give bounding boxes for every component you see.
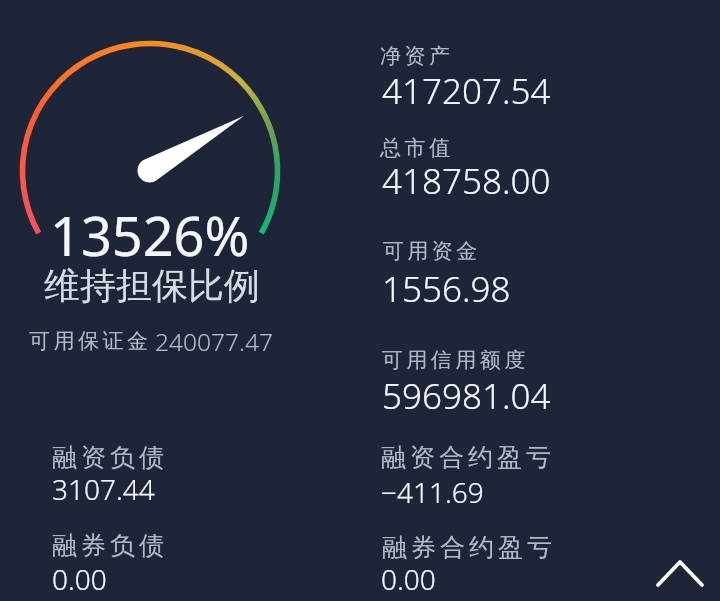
staticText: 可用信用额度 <box>380 347 527 373</box>
staticText: 融资合约盈亏 <box>379 442 553 473</box>
button[interactable]: 总市值 418758.00 <box>376 128 706 208</box>
staticText: 净资产 <box>380 43 454 69</box>
button[interactable]: 融券负债 0.00 <box>40 524 340 596</box>
staticText: 596981.04 <box>382 372 551 420</box>
button[interactable]: 融资负债 3107.44 <box>40 436 340 508</box>
button[interactable]: Collapse <box>648 548 712 601</box>
staticText: 融资负债 <box>50 442 166 473</box>
staticText: 融券合约盈亏 <box>380 532 554 563</box>
button[interactable]: 可用资金 1556.98 <box>376 232 706 312</box>
button[interactable]: 可用信用额度 596981.04 <box>376 340 706 420</box>
staticText: 13526% <box>50 198 250 272</box>
staticText: 可用保证金 <box>29 328 152 354</box>
button[interactable]: 净资产 417207.54 <box>376 36 706 116</box>
staticText: 418758.00 <box>382 157 551 205</box>
staticText: 0.00 <box>52 560 107 598</box>
button[interactable]: 融券合约盈亏 0.00 <box>370 524 640 596</box>
staticText: −411.69 <box>381 473 484 511</box>
staticText: 1556.98 <box>382 265 511 313</box>
staticText: 融券负债 <box>50 530 166 561</box>
staticText: 240077.47 <box>155 325 273 358</box>
staticText: 3107.44 <box>52 470 155 508</box>
button[interactable]: 维持担保比例 13526% <box>24 20 324 320</box>
staticText: 417207.54 <box>382 67 551 115</box>
staticText: 总市值 <box>380 135 454 161</box>
staticText: 可用资金 <box>381 238 479 264</box>
staticText: 0.00 <box>381 560 436 598</box>
staticText: 维持担保比例 <box>44 263 260 308</box>
button[interactable]: 融资合约盈亏 −411.69 <box>370 436 640 508</box>
